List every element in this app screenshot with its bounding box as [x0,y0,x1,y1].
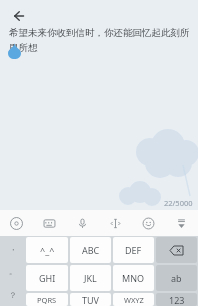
button[interactable]: ABC [70,237,111,263]
button[interactable]: Voice input [66,210,99,236]
staticText: JKL [84,272,97,284]
button[interactable]: Back [4,2,32,30]
button[interactable]: GHI [26,265,68,291]
staticText: TUV [82,294,99,306]
button[interactable]: Move cursor [99,210,132,236]
staticText: 。 [9,266,17,276]
button[interactable]: PQRS [26,293,68,306]
button[interactable]: ab [156,265,197,291]
button[interactable]: ？ [0,283,26,306]
button[interactable]: TUV [70,293,111,306]
button[interactable]: DEF [113,237,154,263]
staticText: 123 [169,294,185,306]
button[interactable]: Hide keyboard [165,210,198,236]
button[interactable]: WXYZ [113,293,154,306]
button[interactable]: Emoji [132,210,165,236]
button[interactable]: JKL [70,265,111,291]
staticText: ， [9,242,17,252]
button[interactable]: MNO [113,265,154,291]
staticText: ABC [82,244,100,256]
button[interactable]: Delete [156,237,197,263]
staticText: GHI [39,272,56,284]
button[interactable]: ， [0,236,26,258]
staticText: MNO [122,272,145,284]
button[interactable]: Keyboard [33,210,66,236]
staticText: DEF [125,244,142,256]
button[interactable]: 123 [156,293,197,306]
staticText: ab [171,272,182,284]
button[interactable]: ^_^ [26,237,68,263]
button[interactable]: Input method [0,210,33,236]
staticText: ^_^ [40,244,55,256]
staticText: WXYZ [124,295,144,305]
staticText: PQRS [37,295,57,305]
staticText: 希望未来你收到信时，你还能回忆起此刻所思所想 [9,27,191,54]
staticText: 22/5000 [164,198,193,208]
staticText: ？ [9,290,17,300]
